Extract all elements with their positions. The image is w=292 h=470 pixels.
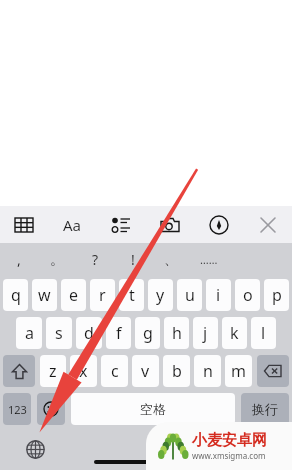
staticText: Aa [63,215,82,235]
staticText: t [129,284,135,306]
button[interactable]: 、 [152,243,190,276]
button[interactable]: k [222,317,247,349]
button[interactable]: t [119,279,144,311]
staticText: b [172,360,182,382]
staticText: …… [200,252,218,267]
staticText: r [99,284,106,306]
button[interactable]: n [194,355,221,387]
staticText: s [55,322,63,344]
staticText: j [203,322,208,344]
button[interactable]: b [163,355,190,387]
staticText: h [172,322,182,344]
button[interactable]: Aa [48,206,96,243]
staticText: u [185,284,195,306]
button[interactable]: Markup [194,206,243,243]
staticText: l [261,322,266,344]
button[interactable]: s [46,317,72,349]
staticText: o [243,284,253,306]
button[interactable]: j [193,317,218,349]
button[interactable]: 换行 [241,393,289,425]
button[interactable]: d [76,317,102,349]
staticText: i [216,284,221,306]
button[interactable]: e [61,279,86,311]
button[interactable]: q [3,279,28,311]
button[interactable]: u [177,279,202,311]
staticText: 空格 [140,401,166,417]
button[interactable]: x [70,355,97,387]
staticText: ? [92,250,99,269]
staticText: m [231,360,246,382]
button[interactable]: Checklist [96,206,145,243]
staticText: 、 [164,251,178,269]
button[interactable]: i [206,279,231,311]
button[interactable]: Shift [3,355,35,387]
staticText: 123 [8,402,27,417]
staticText: z [49,360,57,382]
button[interactable]: w [32,279,57,311]
button[interactable]: ! [114,243,152,276]
button[interactable]: 。 [38,243,76,276]
staticText: f [116,322,122,344]
staticText: v [141,360,150,382]
staticText: 小麦安卓网 [192,431,267,450]
button[interactable]: l [251,317,276,349]
button[interactable]: Camera [145,206,194,243]
button[interactable]: Emoji [37,393,65,425]
button[interactable]: , [0,243,38,276]
staticText: w [38,284,51,306]
staticText: q [11,284,21,306]
staticText: 换行 [252,401,278,417]
staticText: e [69,284,79,306]
button[interactable]: c [101,355,128,387]
staticText: k [230,322,239,344]
button[interactable]: Close keyboard [243,206,292,243]
button[interactable]: g [135,317,160,349]
button[interactable]: 123 [3,393,31,425]
button[interactable]: p [264,279,289,311]
button[interactable]: v [132,355,159,387]
button[interactable]: Change keyboard [22,436,48,462]
button[interactable]: ? [76,243,114,276]
button[interactable]: r [90,279,115,311]
staticText: a [25,322,34,344]
staticText: www.xmsigma.com [192,450,266,461]
button[interactable]: z [40,355,66,387]
button[interactable]: Backspace [257,355,289,387]
button[interactable]: y [148,279,173,311]
button[interactable]: f [106,317,131,349]
staticText: c [111,360,119,382]
staticText: d [84,322,94,344]
staticText: , [17,250,21,269]
button[interactable]: …… [190,243,228,276]
staticText: n [203,360,213,382]
button[interactable]: m [225,355,252,387]
staticText: p [272,284,282,306]
staticText: ! [131,250,135,269]
staticText: 。 [50,251,64,269]
staticText: y [156,284,165,306]
staticText: g [143,322,153,344]
button[interactable]: a [16,317,42,349]
button[interactable]: h [164,317,189,349]
button[interactable]: Insert table [0,206,48,243]
button[interactable]: o [235,279,260,311]
button[interactable]: 空格 [71,393,235,425]
staticText: x [79,360,88,382]
